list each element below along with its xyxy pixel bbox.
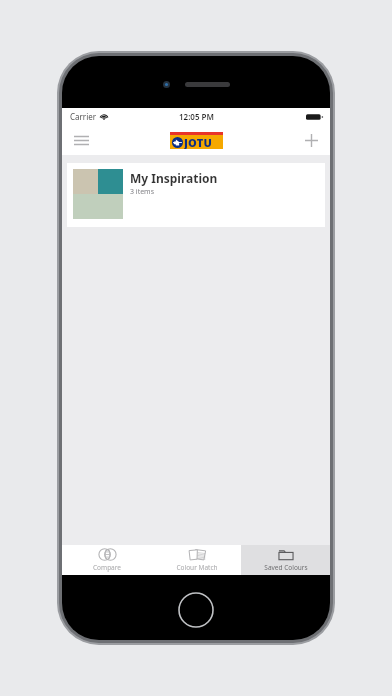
button[interactable]: Compare: [62, 545, 152, 575]
button[interactable]: Colour Match: [152, 545, 241, 575]
button[interactable]: Jotun: [170, 132, 223, 149]
staticText: JOTUN: [184, 135, 221, 149]
button[interactable]: Menu: [68, 127, 94, 153]
button[interactable]: Saved Colours: [241, 545, 330, 575]
staticText: Saved Colours: [264, 563, 308, 572]
staticText: 3 items: [130, 187, 155, 197]
staticText: Compare: [93, 563, 121, 572]
staticText: Carrier: [70, 111, 97, 122]
button[interactable]: Add: [298, 127, 324, 153]
staticText: My Inspiration: [130, 170, 218, 186]
button[interactable]: My Inspiration: [67, 163, 325, 227]
staticText: Colour Match: [176, 563, 218, 572]
staticText: 12:05 PM: [179, 111, 214, 122]
